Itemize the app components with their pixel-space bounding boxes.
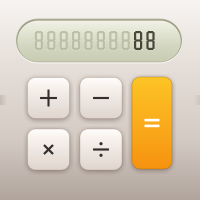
button[interactable]: Subtract — [80, 77, 122, 118]
button[interactable]: Add — [27, 77, 69, 118]
button[interactable]: Divide — [80, 129, 122, 170]
button[interactable]: Equals — [132, 77, 172, 169]
button[interactable]: Multiply — [27, 129, 69, 170]
